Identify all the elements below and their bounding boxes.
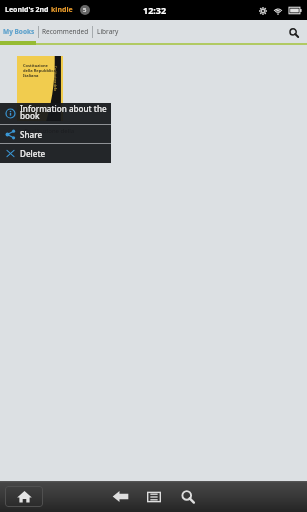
button[interactable]: Search bbox=[281, 19, 307, 44]
staticText: della Repubblica bbox=[23, 68, 56, 73]
button[interactable]: Back bbox=[104, 481, 137, 512]
staticText: Delete bbox=[20, 148, 46, 159]
staticText: Costituzione della bbox=[24, 127, 75, 135]
staticText: Share bbox=[20, 129, 43, 140]
staticText: kindle bbox=[51, 5, 73, 15]
staticText: Leonid's 2nd bbox=[5, 5, 51, 15]
staticText: Information about the book bbox=[20, 103, 107, 121]
button[interactable]: Recommended bbox=[39, 19, 92, 44]
button[interactable]: My Books bbox=[0, 19, 38, 44]
button[interactable]: Home bbox=[5, 486, 43, 507]
button[interactable]: Library bbox=[93, 19, 123, 44]
staticText: Costituzione della Rep. bbox=[53, 66, 57, 94]
button[interactable]: Search bbox=[171, 481, 204, 512]
button[interactable]: Costituzione della Rep. bbox=[17, 56, 63, 121]
button[interactable]: Delete bbox=[0, 144, 111, 163]
staticText: Costituzione bbox=[23, 63, 48, 68]
staticText: Italiana bbox=[23, 73, 39, 78]
staticText: 5 bbox=[83, 6, 87, 14]
staticText: 12:32 bbox=[143, 4, 167, 16]
button[interactable]: Share bbox=[0, 125, 111, 143]
staticText: My Books bbox=[3, 27, 35, 36]
staticText: Recommended bbox=[42, 27, 89, 36]
button[interactable]: Menu bbox=[137, 481, 170, 512]
staticText: Library bbox=[97, 27, 119, 36]
button[interactable]: Information about the book bbox=[0, 103, 111, 124]
